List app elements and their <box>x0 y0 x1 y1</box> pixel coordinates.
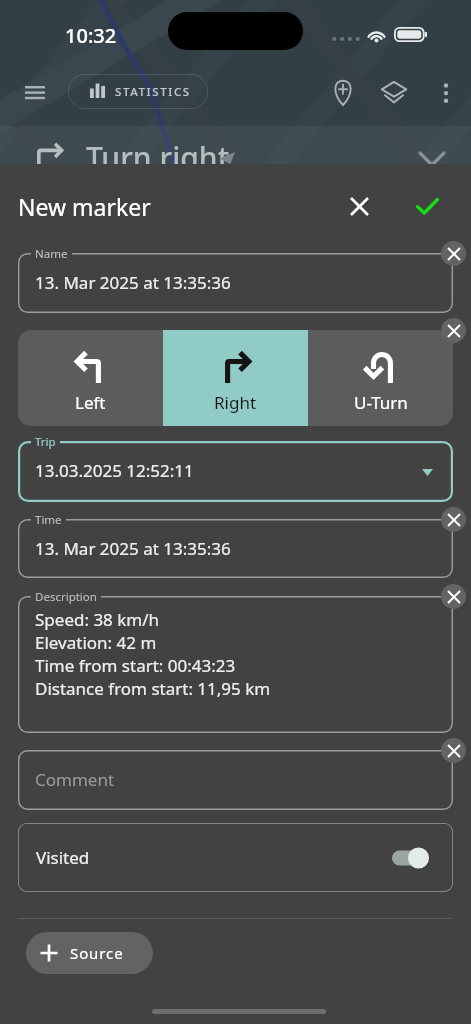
staticText: STATISTICS <box>115 84 191 100</box>
button[interactable]: U-Turn <box>308 330 453 426</box>
button[interactable]: Clear <box>441 584 466 609</box>
staticText: Left <box>75 391 106 414</box>
button[interactable]: Comment <box>18 750 453 810</box>
button[interactable]: Trip <box>18 441 453 502</box>
staticText: New marker <box>18 191 151 222</box>
staticText: Source <box>70 943 124 963</box>
staticText: U-Turn <box>354 391 408 414</box>
staticText: 10:32 <box>65 22 117 49</box>
button[interactable]: Clear <box>441 507 466 532</box>
button[interactable]: STATISTICS <box>68 74 208 109</box>
staticText: 13. Mar 2025 at 13:35:36 <box>35 271 231 294</box>
button[interactable]: Save <box>404 183 451 230</box>
staticText: 13. Mar 2025 at 13:35:36 <box>35 537 231 560</box>
staticText: 13.03.2025 12:52:11 <box>35 459 194 482</box>
button[interactable]: Right <box>163 330 308 426</box>
staticText: Turn right <box>86 137 230 175</box>
button[interactable]: Left <box>18 330 163 426</box>
staticText: Name <box>35 246 68 262</box>
button[interactable]: Description <box>18 596 453 733</box>
staticText: Speed: 38 km/h <box>35 608 160 631</box>
button[interactable]: Name <box>18 253 453 313</box>
button[interactable]: Add marker <box>320 70 365 115</box>
staticText: Trip <box>35 434 56 450</box>
staticText: Elevation: 42 m <box>35 631 157 654</box>
staticText: Right <box>214 391 257 414</box>
button[interactable]: Clear <box>441 738 466 763</box>
button[interactable]: Clear <box>441 318 466 343</box>
staticText: Time from start: 00:43:23 <box>35 654 236 677</box>
staticText: Time <box>35 512 62 528</box>
staticText: Distance from start: 11,95 km <box>35 677 271 700</box>
button[interactable]: Close <box>336 183 383 230</box>
button[interactable]: Time <box>18 519 453 578</box>
button[interactable]: Menu <box>13 70 57 114</box>
staticText: Comment <box>35 768 115 791</box>
button[interactable]: Layers <box>371 70 416 115</box>
staticText: Visited <box>36 846 90 869</box>
button[interactable]: More options <box>423 70 468 115</box>
button[interactable]: Clear <box>441 241 466 266</box>
staticText: Description <box>35 589 97 605</box>
button[interactable]: Source <box>26 932 153 974</box>
button[interactable]: Visited <box>18 823 453 892</box>
